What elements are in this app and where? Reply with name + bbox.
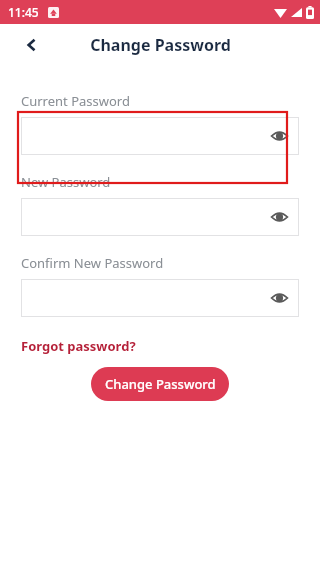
staticText: Current Password [21, 92, 130, 110]
staticText: Change Password [105, 375, 216, 393]
staticText: Confirm New Password [21, 254, 164, 272]
staticText: 11:45 [8, 4, 39, 20]
button[interactable]: Change Password [91, 367, 229, 401]
button[interactable]: Show password [267, 124, 291, 148]
button[interactable]: Back [18, 31, 46, 59]
button[interactable]: Forgot password? [21, 337, 136, 355]
staticText: Change Password [90, 34, 231, 56]
button[interactable]: Show password [21, 117, 299, 155]
staticText: New Password [21, 173, 111, 191]
button[interactable]: Show password [267, 205, 291, 229]
button[interactable]: Show password [267, 286, 291, 310]
button[interactable]: Show password [21, 279, 299, 317]
button[interactable]: Show password [21, 198, 299, 236]
